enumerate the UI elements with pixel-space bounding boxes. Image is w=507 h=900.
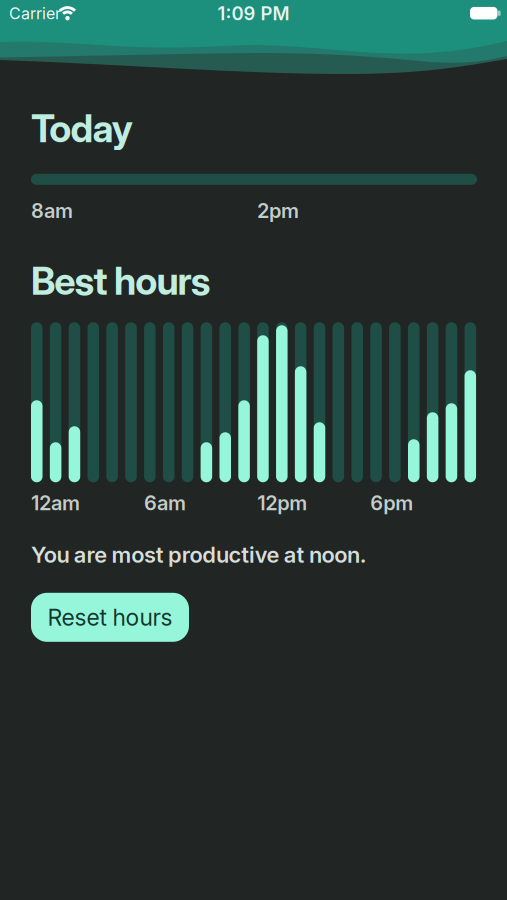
button[interactable]: Reset hours	[31, 593, 189, 642]
staticText: 6am	[144, 491, 186, 515]
staticText: 12am	[31, 491, 80, 515]
staticText: You are most productive at noon.	[31, 542, 367, 568]
staticText: Today	[31, 106, 133, 151]
staticText: Carrier	[9, 4, 61, 23]
staticText: Best hours	[31, 258, 211, 303]
staticText: 12pm	[257, 491, 307, 515]
staticText: 1:09 PM	[217, 3, 289, 24]
staticText: 6pm	[370, 491, 413, 515]
staticText: 8am	[31, 199, 73, 222]
staticText: 2pm	[257, 199, 299, 222]
staticText: Reset hours	[47, 604, 172, 631]
